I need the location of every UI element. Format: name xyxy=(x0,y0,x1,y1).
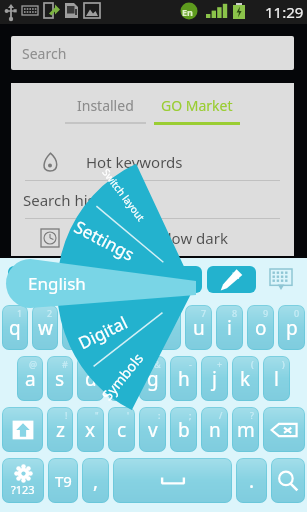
staticText: , xyxy=(93,468,99,494)
button[interactable] xyxy=(271,458,305,503)
button[interactable]: s xyxy=(47,356,73,401)
staticText: v xyxy=(148,417,158,443)
staticText: q xyxy=(9,315,21,341)
staticText: En xyxy=(182,6,193,18)
staticText: ; xyxy=(189,409,192,421)
button[interactable]: q xyxy=(2,305,28,350)
button[interactable]: l xyxy=(263,356,290,401)
button[interactable]: x xyxy=(77,407,104,452)
button[interactable]: Keyboard Glow dark xyxy=(11,219,294,256)
staticText: w xyxy=(38,315,53,341)
staticText: e xyxy=(70,315,81,341)
button[interactable]: j xyxy=(201,356,228,401)
button[interactable]: Search xyxy=(11,36,294,70)
button[interactable]: e xyxy=(62,305,88,350)
button[interactable]: h xyxy=(170,356,197,401)
staticText: 0 xyxy=(294,307,300,319)
staticText: English xyxy=(128,268,186,291)
button[interactable]: y xyxy=(154,305,181,350)
staticText: 11:29 xyxy=(265,2,304,22)
staticText: d xyxy=(85,366,97,392)
button[interactable]: v xyxy=(139,407,166,452)
staticText: / xyxy=(219,409,223,421)
button[interactable] xyxy=(113,458,232,503)
staticText: m xyxy=(237,417,255,443)
staticText: @ xyxy=(29,358,38,370)
button[interactable]: m xyxy=(232,407,259,452)
staticText: k xyxy=(240,366,251,392)
staticText: GO Market xyxy=(161,96,233,115)
button[interactable]: Installed xyxy=(65,94,146,116)
staticText: l xyxy=(274,366,279,392)
staticText: Search xyxy=(22,44,67,63)
button[interactable]: Keyboard layout menu xyxy=(0,0,307,512)
staticText: : xyxy=(158,409,161,421)
staticText: c xyxy=(117,417,127,443)
staticText: g xyxy=(147,366,159,392)
staticText: $ xyxy=(93,358,99,370)
staticText: 1 xyxy=(17,307,23,319)
staticText: ?123 xyxy=(11,482,35,497)
button[interactable]: i xyxy=(216,305,243,350)
button[interactable]: z xyxy=(47,407,73,452)
staticText: ' xyxy=(127,409,130,421)
staticText: t xyxy=(133,315,140,341)
button[interactable]: . xyxy=(236,458,267,503)
button[interactable]: d xyxy=(77,356,104,401)
staticText: T9 xyxy=(55,471,72,491)
staticText: # xyxy=(62,358,68,370)
button[interactable]: r xyxy=(92,305,119,350)
button[interactable]: c xyxy=(108,407,135,452)
staticText: i xyxy=(227,315,232,341)
staticText: 2 xyxy=(47,307,53,319)
staticText: a xyxy=(25,366,36,392)
staticText: y xyxy=(163,315,173,341)
staticText: ) xyxy=(282,358,285,370)
staticText: Keyboard Glow dark xyxy=(86,228,228,248)
button[interactable]: o xyxy=(247,305,274,350)
staticText: - xyxy=(189,358,192,370)
staticText: p xyxy=(286,315,298,341)
button[interactable]: b xyxy=(170,407,197,452)
staticText: f xyxy=(118,366,125,392)
button[interactable]: u xyxy=(185,305,212,350)
staticText: ? xyxy=(250,409,254,421)
staticText: u xyxy=(193,315,205,341)
staticText: h xyxy=(178,366,190,392)
button[interactable]: Search history xyxy=(11,181,294,218)
staticText: 7 xyxy=(201,307,207,319)
staticText: z xyxy=(56,417,65,443)
staticText: & xyxy=(154,358,161,370)
button[interactable]: T9 xyxy=(48,458,78,503)
staticText: . xyxy=(249,468,255,494)
staticText: x xyxy=(85,417,96,443)
staticText: Hot keywords xyxy=(86,152,183,172)
button[interactable]: f xyxy=(108,356,135,401)
staticText: o xyxy=(255,315,267,341)
button[interactable]: Hide keyboard xyxy=(267,266,295,294)
staticText: " xyxy=(95,409,99,421)
button[interactable]: ?123 xyxy=(2,458,44,503)
button[interactable]: w xyxy=(32,305,58,350)
button[interactable]: , xyxy=(82,458,109,503)
button[interactable]: GO Market xyxy=(154,94,240,116)
button[interactable]: a xyxy=(17,356,43,401)
button[interactable]: p xyxy=(278,305,305,350)
staticText: r xyxy=(102,315,110,341)
staticText: + xyxy=(217,358,223,370)
staticText: n xyxy=(209,417,221,443)
button[interactable]: g xyxy=(139,356,166,401)
button[interactable]: n xyxy=(201,407,228,452)
button[interactable]: Hot keywords xyxy=(11,143,294,180)
button[interactable]: k xyxy=(232,356,259,401)
button[interactable] xyxy=(263,407,305,452)
button[interactable] xyxy=(2,407,43,452)
button[interactable]: Handwriting xyxy=(207,266,256,293)
staticText: s xyxy=(55,366,65,392)
button[interactable]: t xyxy=(123,305,150,350)
staticText: j xyxy=(212,366,217,392)
button[interactable]: English xyxy=(8,266,202,293)
